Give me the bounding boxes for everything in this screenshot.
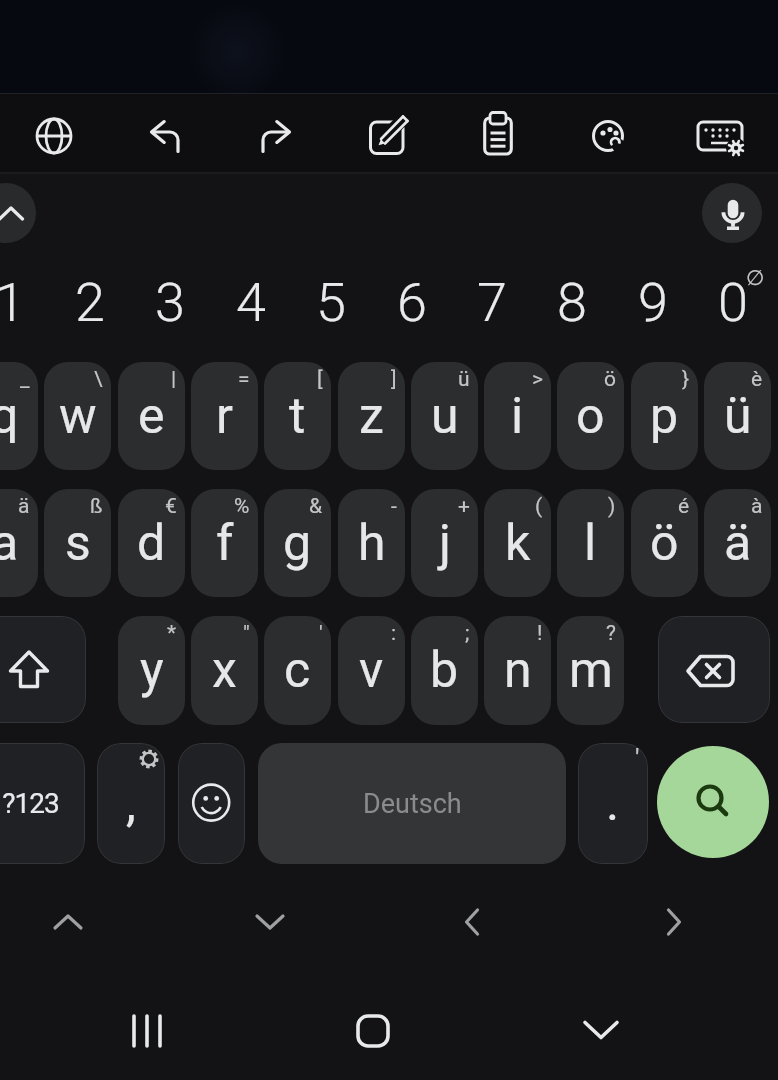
button[interactable]: ü	[704, 362, 771, 470]
button[interactable]	[178, 743, 245, 864]
button[interactable]	[0, 183, 36, 243]
button[interactable]: k	[484, 489, 551, 597]
button[interactable]	[569, 999, 633, 1063]
button[interactable]	[26, 108, 82, 164]
button[interactable]: ?123	[0, 743, 85, 864]
staticText: m	[569, 641, 613, 700]
button[interactable]: n	[484, 616, 551, 725]
staticText: +	[458, 494, 470, 519]
button[interactable]: 0	[693, 257, 773, 347]
button[interactable]: o	[557, 362, 624, 470]
button[interactable]	[341, 999, 405, 1063]
staticText: p	[650, 387, 679, 446]
button[interactable]	[702, 183, 762, 243]
staticText: q	[0, 387, 19, 446]
button[interactable]: g	[264, 489, 331, 597]
button[interactable]: w	[44, 362, 111, 470]
button[interactable]: s	[44, 489, 111, 597]
staticText: \	[94, 367, 103, 392]
staticText: é	[678, 494, 690, 519]
staticText: '	[319, 621, 323, 646]
button[interactable]	[650, 898, 698, 946]
staticText: h	[358, 514, 386, 573]
staticText: &	[309, 494, 323, 519]
staticText: o	[576, 387, 605, 446]
button[interactable]	[0, 616, 86, 723]
button[interactable]: 2	[50, 257, 130, 347]
button[interactable]: 1	[0, 257, 50, 347]
button[interactable]	[248, 108, 304, 164]
button[interactable]: l	[557, 489, 624, 597]
button[interactable]: i	[484, 362, 551, 470]
button[interactable]: 9	[613, 257, 693, 347]
button[interactable]: ,	[97, 743, 165, 864]
button[interactable]	[692, 108, 748, 164]
staticText: r	[216, 387, 233, 446]
button[interactable]: t	[264, 362, 331, 470]
button[interactable]: e	[118, 362, 185, 470]
button[interactable]	[657, 746, 769, 858]
staticText: 0	[718, 271, 748, 334]
staticText: i	[511, 387, 524, 446]
staticText: .	[606, 774, 620, 833]
button[interactable]: a	[0, 489, 38, 597]
button[interactable]	[246, 898, 294, 946]
button[interactable]	[448, 898, 496, 946]
staticText: ;	[465, 621, 470, 646]
button[interactable]	[137, 108, 193, 164]
staticText: z	[359, 387, 384, 446]
staticText: (	[535, 494, 543, 519]
button[interactable]: b	[411, 616, 478, 725]
button[interactable]: r	[191, 362, 258, 470]
button[interactable]: y	[118, 616, 185, 725]
button[interactable]: d	[118, 489, 185, 597]
staticText: c	[284, 641, 311, 700]
staticText: ä	[18, 494, 30, 519]
button[interactable]: .	[578, 743, 648, 864]
button[interactable]: ä	[704, 489, 771, 597]
staticText: *	[167, 621, 177, 646]
staticText: b	[430, 641, 459, 700]
button[interactable]: ö	[631, 489, 698, 597]
button[interactable]: u	[411, 362, 478, 470]
staticText: ,	[126, 774, 136, 833]
button[interactable]: 3	[130, 257, 210, 347]
staticText: ä	[724, 514, 752, 573]
button[interactable]: c	[264, 616, 331, 725]
staticText: a	[0, 514, 19, 573]
staticText: €	[165, 494, 177, 519]
button[interactable]	[115, 999, 179, 1063]
staticText: >	[532, 367, 543, 392]
button[interactable]: z	[338, 362, 405, 470]
button[interactable]: j	[411, 489, 478, 597]
button[interactable]	[581, 108, 637, 164]
staticText: ö	[604, 367, 616, 392]
button[interactable]	[44, 898, 92, 946]
button[interactable]: 8	[532, 257, 612, 347]
staticText: v	[359, 641, 384, 700]
staticText: :	[391, 621, 397, 646]
staticText: s	[65, 514, 91, 573]
staticText: }	[682, 367, 690, 392]
button[interactable]: 4	[211, 257, 291, 347]
staticText: ]	[391, 367, 397, 392]
staticText: y	[140, 641, 164, 700]
button[interactable]: v	[338, 616, 405, 725]
staticText: l	[584, 514, 597, 573]
button[interactable]	[359, 108, 415, 164]
button[interactable]: h	[338, 489, 405, 597]
staticText: x	[212, 641, 237, 700]
button[interactable]	[470, 108, 526, 164]
button[interactable]: m	[557, 616, 624, 725]
staticText: 8	[557, 271, 587, 334]
button[interactable]: f	[191, 489, 258, 597]
button[interactable]: p	[631, 362, 698, 470]
button[interactable]: Deutsch	[258, 743, 566, 864]
button[interactable]: x	[191, 616, 258, 725]
button[interactable]	[658, 616, 770, 723]
button[interactable]: 7	[452, 257, 532, 347]
button[interactable]: q	[0, 362, 38, 470]
button[interactable]: 5	[291, 257, 371, 347]
button[interactable]: 6	[372, 257, 452, 347]
staticText: 3	[155, 271, 185, 334]
